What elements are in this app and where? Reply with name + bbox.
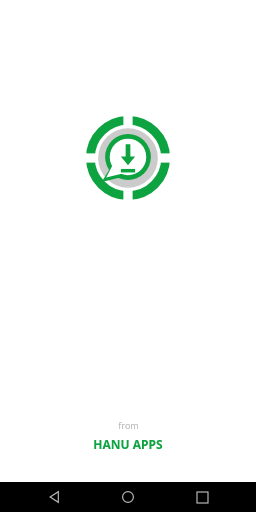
button[interactable]: Recent apps — [182, 482, 222, 512]
staticText: HANU APPS — [93, 436, 163, 452]
staticText: from — [118, 419, 139, 431]
button[interactable]: Home — [108, 482, 148, 512]
button[interactable]: Back — [34, 482, 74, 512]
